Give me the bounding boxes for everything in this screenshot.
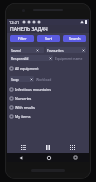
button[interactable]: List view bbox=[11, 141, 35, 153]
other: Remove Favourites bbox=[82, 49, 85, 52]
button[interactable]: Saved bbox=[10, 47, 44, 53]
button[interactable]: Search bbox=[63, 35, 86, 42]
button[interactable]: My items bbox=[7, 112, 89, 121]
button[interactable]: Infectious mountains bbox=[7, 85, 89, 94]
staticText: Infectious mountains bbox=[15, 87, 51, 92]
staticText: Saved bbox=[11, 48, 21, 53]
staticText: Workload bbox=[36, 77, 52, 82]
button[interactable]: Grid view bbox=[60, 141, 85, 153]
button[interactable]: Responsible person bbox=[10, 55, 53, 61]
staticText: ПАНЕЛЬ ЗАДАЧ bbox=[10, 26, 48, 33]
button[interactable]: Nurseries bbox=[7, 94, 89, 103]
other: Remove Saved bbox=[36, 49, 39, 52]
button[interactable]: Filter bbox=[10, 35, 34, 42]
other: Remove Scope bbox=[30, 78, 33, 81]
staticText: Sort bbox=[45, 36, 52, 41]
button[interactable]: All equipment bbox=[7, 64, 89, 73]
button[interactable]: Favourites bbox=[46, 47, 86, 53]
staticText: Nurseries bbox=[15, 96, 32, 101]
staticText: Scope bbox=[11, 77, 20, 82]
staticText: Equipment name bbox=[55, 56, 83, 61]
button[interactable]: Recent apps bbox=[62, 153, 89, 162]
button[interactable]: Home bbox=[35, 153, 62, 162]
staticText: Responsible person bbox=[11, 56, 30, 61]
other: Remove Responsible person bbox=[49, 57, 52, 60]
staticText: My items bbox=[15, 114, 31, 119]
button[interactable]: With results bbox=[7, 103, 89, 112]
staticText: 12:21 bbox=[9, 20, 20, 25]
staticText: With results bbox=[15, 105, 36, 110]
staticText: Search bbox=[69, 36, 81, 41]
staticText: All equipment bbox=[15, 66, 39, 71]
button[interactable]: Scope bbox=[10, 76, 34, 82]
button[interactable]: Back bbox=[7, 153, 35, 162]
button[interactable]: Sort bbox=[37, 35, 60, 42]
staticText: Filter bbox=[18, 36, 27, 41]
button[interactable]: Documents bbox=[35, 141, 60, 153]
staticText: Favourites bbox=[47, 48, 64, 53]
